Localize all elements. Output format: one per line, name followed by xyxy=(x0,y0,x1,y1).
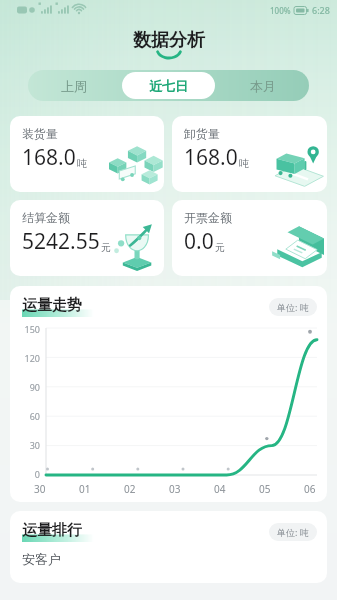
staticText: 05 xyxy=(259,482,271,496)
staticText: 120 xyxy=(24,352,40,364)
staticText: 100% xyxy=(270,5,291,16)
staticText: 元 xyxy=(215,241,225,254)
staticText: 安客户 xyxy=(22,551,61,567)
staticText: 168.0 xyxy=(184,143,238,172)
staticText: 02 xyxy=(124,482,136,496)
staticText: 90 xyxy=(29,381,40,393)
staticText: 近七日 xyxy=(149,78,188,94)
staticText: 04 xyxy=(214,482,226,496)
staticText: 0 xyxy=(34,468,40,480)
staticText: 30 xyxy=(34,482,46,496)
button[interactable]: 近七日 xyxy=(122,72,215,99)
staticText: 30 xyxy=(29,439,40,451)
staticText: 0.0 xyxy=(184,227,214,256)
staticText: 元 xyxy=(101,241,111,254)
button[interactable]: 开票金额 xyxy=(172,200,327,276)
staticText: 结算金额 xyxy=(22,210,70,225)
button[interactable]: 结算金额 xyxy=(10,200,164,276)
staticText: 吨 xyxy=(77,157,87,170)
staticText: 6:28 xyxy=(312,4,330,16)
staticText: 03 xyxy=(169,482,181,496)
button[interactable]: 上周 xyxy=(30,72,118,99)
staticText: 5242.55 xyxy=(22,227,100,256)
button[interactable]: 装货量 xyxy=(10,116,164,192)
staticText: 60 xyxy=(29,410,40,422)
staticText: 上周 xyxy=(61,78,87,94)
staticText: 168.0 xyxy=(22,143,76,172)
staticText: 06 xyxy=(304,482,316,496)
button[interactable]: 本月 xyxy=(219,72,307,99)
staticText: 数据分析 xyxy=(133,29,205,52)
staticText: 单位: 吨 xyxy=(277,301,309,313)
staticText: 装货量 xyxy=(22,126,58,141)
staticText: 01 xyxy=(79,482,91,496)
staticText: 吨 xyxy=(239,157,249,170)
staticText: 卸货量 xyxy=(184,126,220,141)
staticText: 运量走势 xyxy=(22,296,82,315)
staticText: 开票金额 xyxy=(184,210,232,225)
staticText: 运量排行 xyxy=(22,521,82,540)
staticText: 单位: 吨 xyxy=(277,526,309,538)
staticText: 本月 xyxy=(250,78,276,94)
staticText: 150 xyxy=(24,323,40,335)
button[interactable]: 卸货量 xyxy=(172,116,327,192)
